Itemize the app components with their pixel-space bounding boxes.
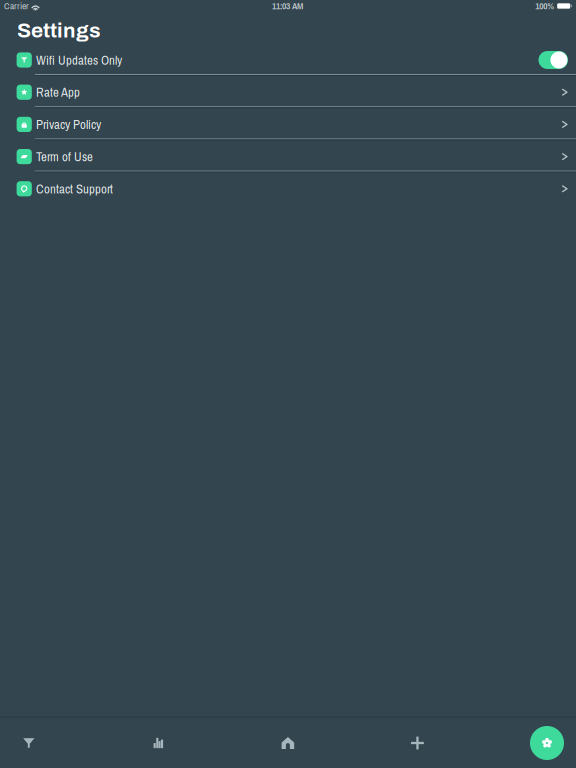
button[interactable]: Add — [400, 718, 434, 768]
staticText: Term of Use — [36, 148, 93, 165]
staticText: Rate App — [36, 84, 80, 101]
staticText: Privacy Policy — [36, 116, 101, 133]
staticText: Carrier — [4, 0, 29, 12]
button[interactable]: Home — [271, 718, 305, 768]
staticText: 100% — [535, 0, 554, 12]
button[interactable]: Rate App — [0, 78, 576, 110]
button[interactable]: Privacy Policy — [0, 110, 576, 143]
button[interactable]: Contact Support — [0, 175, 576, 207]
staticText: Wifi Updates Only — [36, 51, 122, 69]
button[interactable]: Settings — [530, 718, 564, 768]
button[interactable]: Statistics — [141, 718, 175, 768]
button[interactable]: Term of Use — [0, 143, 576, 175]
staticText: Settings — [17, 19, 101, 42]
staticText: Contact Support — [36, 180, 113, 197]
button[interactable]: Wifi Updates Only — [0, 46, 576, 78]
button[interactable]: Filter — [12, 718, 46, 768]
staticText: 11:03 AM — [272, 0, 303, 12]
